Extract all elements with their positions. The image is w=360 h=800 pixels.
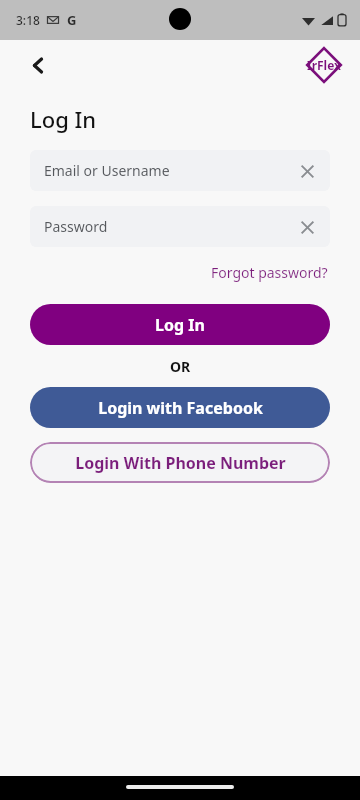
staticText: Log In: [155, 314, 205, 336]
button[interactable]: Back: [22, 49, 54, 81]
staticText: OR: [170, 357, 191, 376]
staticText: Forgot password?: [211, 263, 328, 282]
staticText: 3:18: [16, 12, 40, 28]
staticText: Email or Username: [44, 161, 296, 180]
staticText: Log In: [30, 104, 97, 134]
staticText: IrFlex: [307, 57, 342, 73]
button[interactable]: Clear Password: [296, 216, 318, 238]
button[interactable]: Login With Phone Number: [30, 442, 330, 483]
button[interactable]: IrFlex logo: [300, 41, 348, 89]
button[interactable]: Password: [30, 206, 330, 247]
button[interactable]: Login with Facebook: [30, 387, 330, 428]
button[interactable]: Forgot password?: [209, 259, 330, 286]
button[interactable]: Clear Email or Username: [296, 160, 318, 182]
staticText: Login With Phone Number: [75, 452, 286, 474]
button[interactable]: Log In: [30, 304, 330, 345]
button[interactable]: Email or Username: [30, 150, 330, 191]
staticText: G: [67, 11, 77, 29]
staticText: Login with Facebook: [98, 397, 263, 419]
staticText: Password: [44, 217, 296, 236]
